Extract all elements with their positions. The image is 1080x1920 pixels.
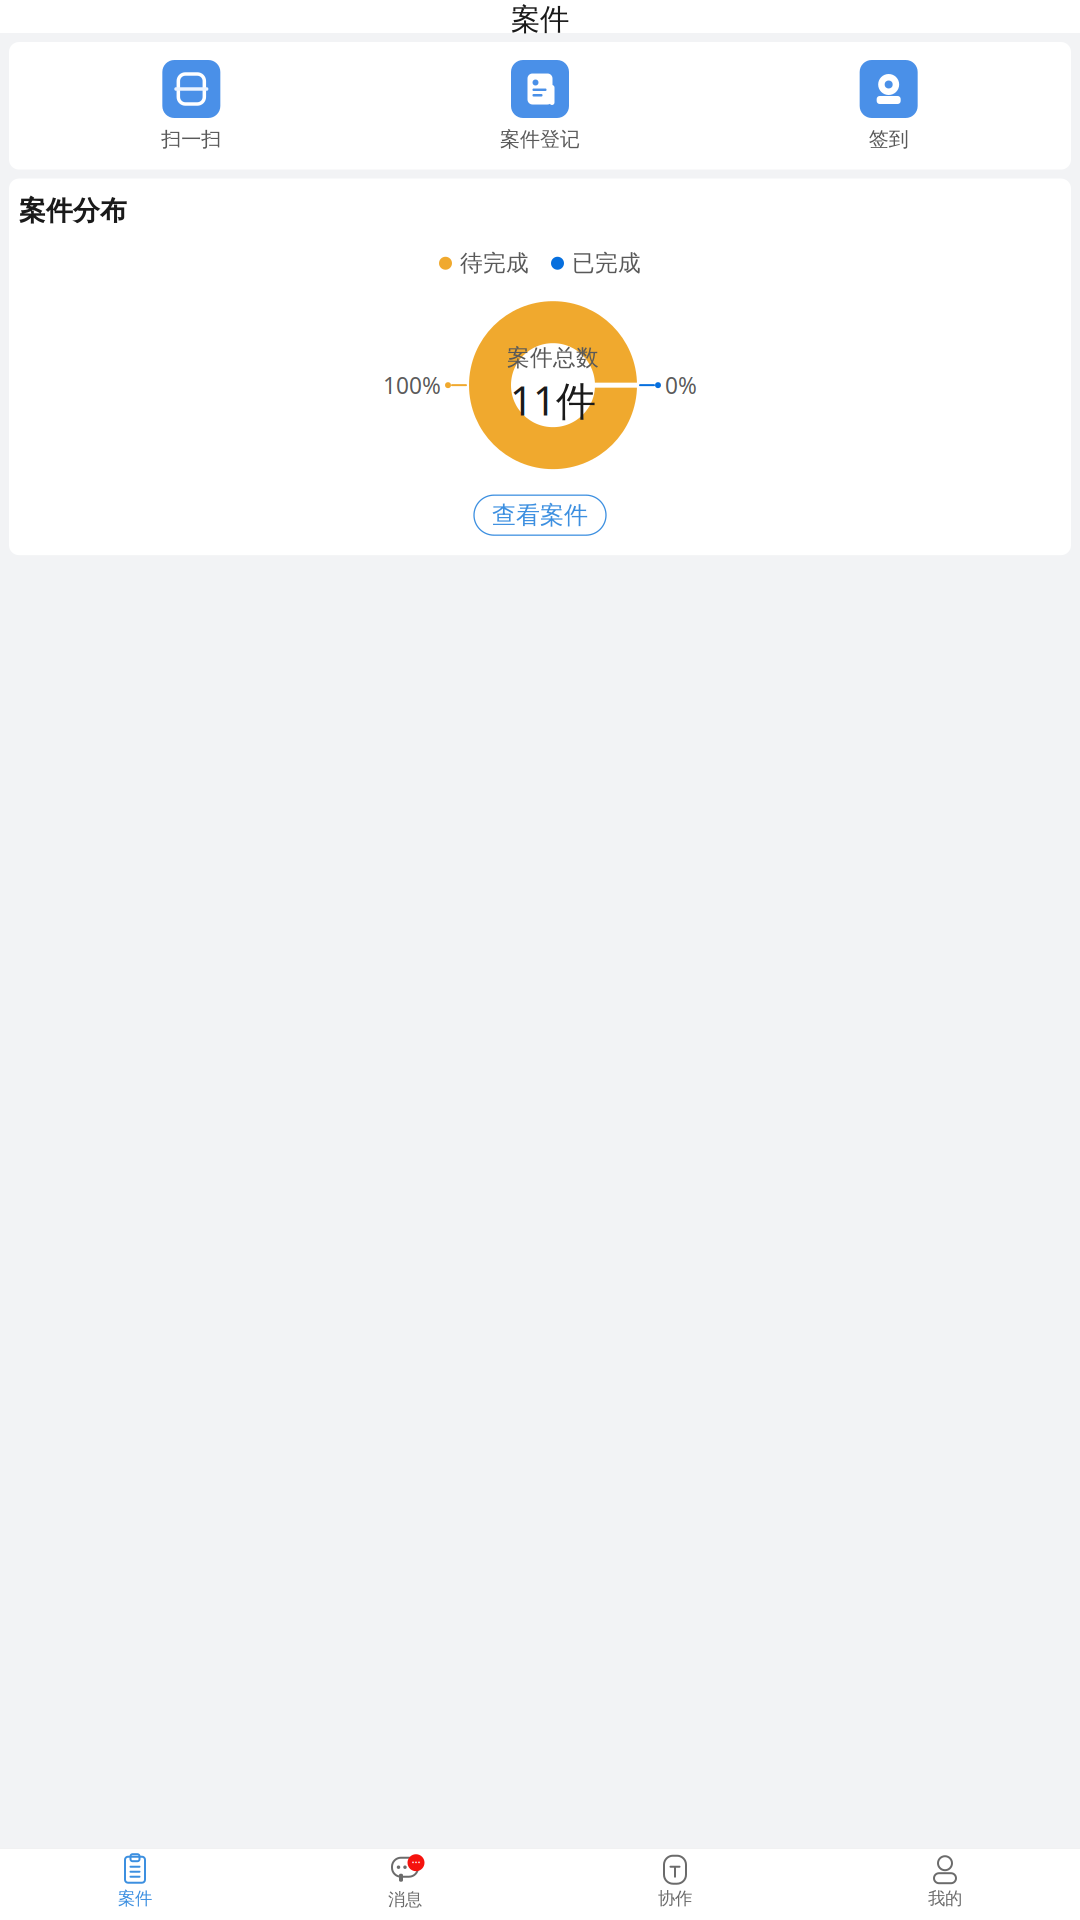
staticText: 签到 [869,127,909,152]
staticText: 案件总数 [507,344,599,371]
button[interactable]: 查看案件 [474,495,606,535]
button[interactable]: 案件登记 [366,56,714,156]
staticText: 案件分布 [19,195,127,227]
button[interactable]: 案件 [0,1850,270,1919]
staticText: 案件 [511,1,569,37]
staticText: 协作 [658,1888,692,1909]
button[interactable]: ··· [270,1849,540,1920]
staticText: 11件 [510,373,596,427]
staticText: 扫一扫 [161,127,221,152]
staticText: 案件登记 [500,127,580,152]
staticText: 0% [665,370,697,400]
staticText: 100% [383,370,441,400]
button[interactable]: 我的 [810,1850,1080,1919]
staticText: 待完成 [460,249,529,277]
staticText: 案件 [118,1888,152,1909]
button[interactable]: 扫一扫 [17,56,366,156]
staticText: 消息 [388,1889,422,1910]
button[interactable]: 协作 [540,1850,810,1919]
button[interactable]: 签到 [714,56,1063,156]
staticText: 我的 [928,1888,962,1909]
staticText: 查看案件 [492,500,588,530]
staticText: 已完成 [572,249,641,277]
staticText: ··· [411,1855,420,1871]
